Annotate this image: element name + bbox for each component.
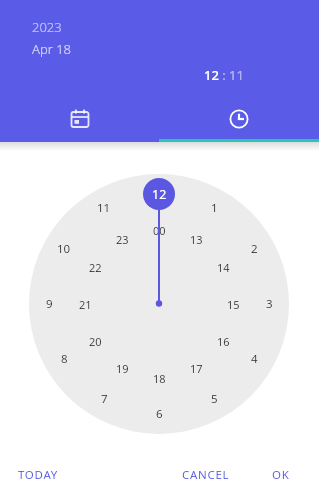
staticText: 4 (251, 351, 258, 367)
staticText: 2 (251, 241, 258, 257)
staticText: 1 (211, 200, 218, 216)
staticText: OK (272, 467, 290, 483)
staticText: 3 (266, 296, 273, 312)
staticText: 12 : 11 (204, 66, 244, 84)
staticText: TODAY (18, 467, 58, 483)
button[interactable] (159, 96, 319, 142)
staticText: 23 (116, 232, 129, 247)
staticText: 20 (89, 334, 102, 349)
staticText: 7 (101, 391, 108, 407)
button[interactable] (0, 96, 159, 142)
staticText: Apr 18 (32, 40, 72, 58)
staticText: CANCEL (182, 467, 230, 483)
staticText: 00 (153, 223, 166, 238)
staticText: 16 (217, 334, 230, 349)
staticText: 17 (190, 361, 203, 376)
staticText: 19 (116, 361, 129, 376)
staticText: 15 (227, 297, 240, 312)
staticText: 5 (211, 391, 218, 407)
staticText: 2023 (32, 18, 62, 36)
staticText: 9 (46, 296, 53, 312)
staticText: 6 (156, 406, 163, 422)
button[interactable]: TODAY (6, 462, 46, 488)
button[interactable]: CANCEL (170, 462, 218, 488)
staticText: 18 (153, 371, 166, 386)
staticText: 21 (79, 297, 92, 312)
staticText: 8 (61, 351, 68, 367)
staticText: 11 (97, 200, 111, 216)
staticText: 12 (152, 186, 167, 203)
staticText: 10 (57, 241, 71, 257)
button[interactable]: OK (260, 462, 278, 488)
staticText: 14 (217, 260, 230, 275)
staticText: 22 (89, 260, 102, 275)
staticText: 13 (190, 232, 203, 247)
